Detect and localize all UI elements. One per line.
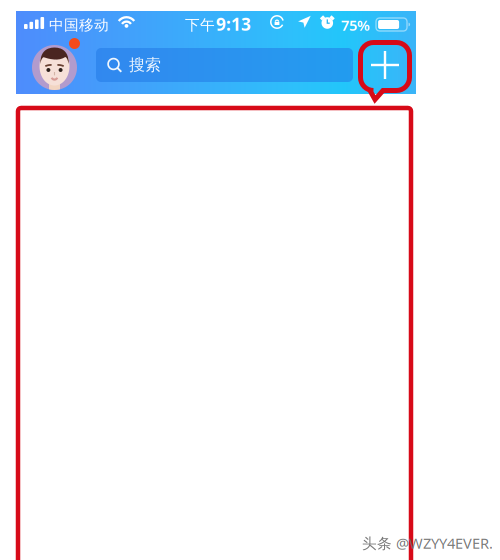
staticText: 搜索 xyxy=(129,55,161,75)
button[interactable]: 搜索 xyxy=(96,48,353,82)
staticText: 头条 @WZYY4EVER. xyxy=(362,533,493,553)
staticText: 9:13 xyxy=(216,12,251,35)
button[interactable]: Profile xyxy=(32,45,77,90)
staticText: 中国移动 xyxy=(49,16,109,34)
staticText: 下午 xyxy=(185,16,215,34)
staticText: 75% xyxy=(341,15,370,35)
button[interactable]: Add xyxy=(362,42,408,88)
